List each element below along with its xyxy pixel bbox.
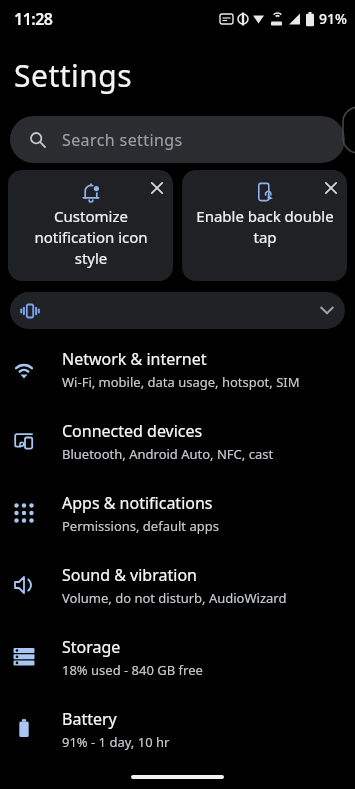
staticText: 11:28: [14, 8, 53, 30]
button[interactable]: Enable back double tap: [182, 170, 347, 281]
button[interactable]: Connected devices: [0, 405, 355, 477]
staticText: Volume, do not disturb, AudioWizard: [62, 589, 287, 607]
staticText: Sound & vibration: [62, 564, 197, 586]
staticText: Wi-Fi, mobile, data usage, hotspot, SIM: [62, 373, 300, 391]
button[interactable]: [10, 292, 345, 329]
staticText: 18% used - 840 GB free: [62, 661, 203, 679]
button[interactable]: Sound & vibration: [0, 549, 355, 621]
staticText: Search settings: [62, 129, 183, 151]
staticText: Connected devices: [62, 420, 203, 442]
button[interactable]: Battery: [0, 693, 355, 765]
button[interactable]: Network & internet: [0, 333, 355, 405]
staticText: Bluetooth, Android Auto, NFC, cast: [62, 445, 274, 463]
staticText: Settings: [14, 55, 133, 96]
button[interactable]: Apps & notifications: [0, 477, 355, 549]
staticText: Customize notification icon style: [34, 206, 148, 269]
staticText: Storage: [62, 636, 121, 658]
staticText: Apps & notifications: [62, 492, 213, 514]
staticText: Enable back double tap: [196, 206, 334, 248]
button[interactable]: Search settings: [10, 116, 345, 163]
button[interactable]: Customize notification icon style: [8, 170, 173, 281]
button[interactable]: Storage: [0, 621, 355, 693]
staticText: Permissions, default apps: [62, 517, 219, 535]
staticText: Battery: [62, 708, 117, 730]
staticText: Network & internet: [62, 348, 207, 370]
staticText: 91% - 1 day, 10 hr: [62, 733, 170, 751]
staticText: 91%: [319, 9, 347, 28]
